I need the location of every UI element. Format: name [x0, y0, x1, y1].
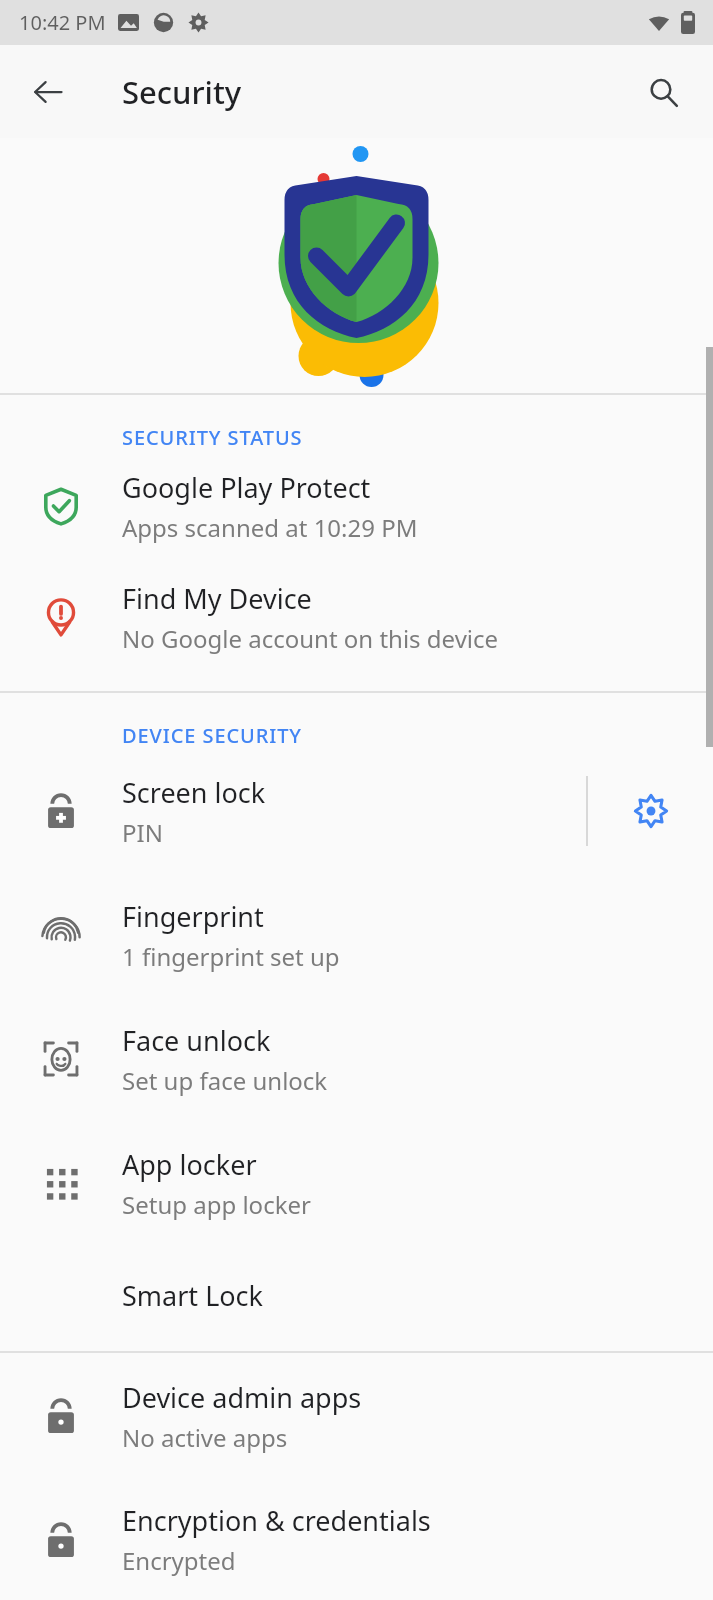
- staticText: No Google account on this device: [122, 622, 499, 655]
- staticText: Encryption & credentials: [122, 1502, 431, 1539]
- button[interactable]: Back: [14, 58, 82, 126]
- staticText: Screen lock: [122, 774, 266, 811]
- staticText: Fingerprint: [122, 898, 264, 935]
- button[interactable]: Find My Device: [0, 561, 713, 673]
- staticText: Security: [122, 71, 242, 113]
- button[interactable]: Search: [629, 58, 697, 126]
- staticText: Encrypted: [122, 1544, 236, 1577]
- staticText: App locker: [122, 1146, 257, 1183]
- staticText: 10:42 PM: [19, 9, 106, 36]
- button[interactable]: Google Play Protect: [0, 451, 713, 561]
- staticText: Smart Lock: [122, 1277, 263, 1314]
- button[interactable]: Smart Lock: [0, 1245, 713, 1345]
- button[interactable]: Screen lock settings: [588, 756, 713, 866]
- button[interactable]: Device admin apps: [0, 1353, 713, 1479]
- staticText: Find My Device: [122, 580, 312, 617]
- button[interactable]: Encryption & credentials: [0, 1479, 713, 1600]
- staticText: Apps scanned at 10:29 PM: [122, 511, 418, 544]
- button[interactable]: Fingerprint: [0, 873, 713, 997]
- staticText: PIN: [122, 816, 163, 849]
- staticText: Setup app locker: [122, 1188, 311, 1221]
- staticText: Face unlock: [122, 1022, 271, 1059]
- staticText: Google Play Protect: [122, 469, 371, 506]
- button[interactable]: Face unlock: [0, 997, 713, 1121]
- staticText: Set up face unlock: [122, 1064, 328, 1097]
- staticText: DEVICE SECURITY: [122, 722, 302, 749]
- staticText: SECURITY STATUS: [122, 424, 303, 451]
- staticText: No active apps: [122, 1421, 288, 1454]
- button[interactable]: Screen lock: [0, 749, 713, 873]
- staticText: Device admin apps: [122, 1379, 362, 1416]
- staticText: 1 fingerprint set up: [122, 940, 340, 973]
- button[interactable]: App locker: [0, 1121, 713, 1245]
